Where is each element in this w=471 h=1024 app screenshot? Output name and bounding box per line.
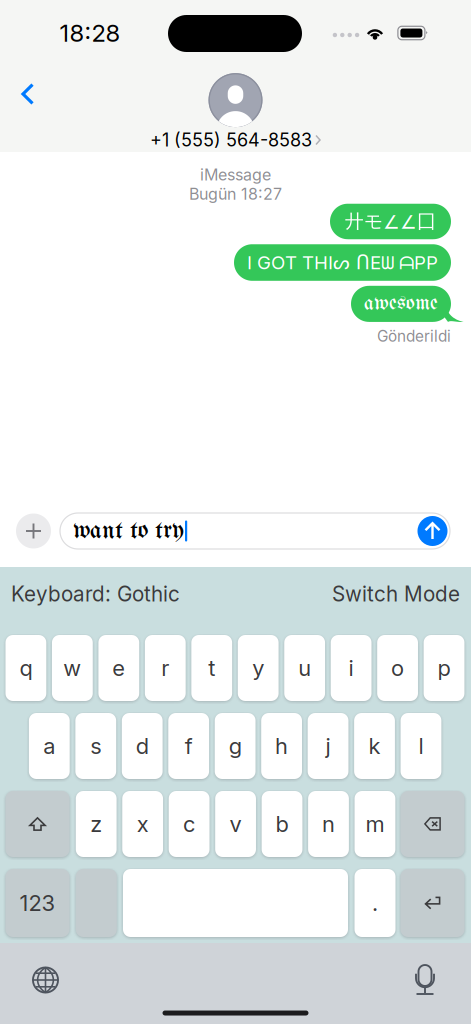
button[interactable]: i: [331, 635, 371, 701]
button[interactable]: .: [354, 869, 395, 937]
button[interactable]: 123: [5, 869, 69, 937]
button[interactable]: t: [191, 635, 232, 701]
button[interactable]: Back: [6, 72, 50, 116]
button[interactable]: h: [261, 713, 302, 779]
staticText: a: [43, 733, 55, 759]
staticText: s: [90, 733, 101, 759]
staticText: Bugün 18:27: [189, 184, 282, 204]
button[interactable]: n: [308, 791, 349, 857]
button[interactable]: w: [52, 635, 93, 701]
button[interactable]: e: [98, 635, 139, 701]
staticText: w: [63, 655, 81, 681]
staticText: j: [326, 733, 331, 759]
button[interactable]: I GOT THIᔕ ᑎEᗯ ᗩPP: [234, 244, 451, 281]
button[interactable]: d: [122, 713, 163, 779]
button[interactable]: v: [215, 791, 256, 857]
button[interactable]: k: [354, 713, 395, 779]
button[interactable]: m: [355, 791, 395, 857]
staticText: m: [365, 811, 384, 837]
staticText: k: [368, 733, 380, 759]
button[interactable]: Next keyboard: [23, 958, 67, 1002]
staticText: want to try: [73, 518, 184, 544]
staticText: Switch Mode: [332, 581, 460, 606]
button[interactable]: Switch Mode: [332, 581, 460, 606]
button[interactable]: a: [29, 713, 70, 779]
staticText: c: [183, 811, 195, 837]
button[interactable]: r: [145, 635, 186, 701]
staticText: i: [349, 655, 354, 681]
button[interactable]: Shift: [5, 791, 69, 857]
staticText: q: [19, 655, 32, 681]
staticText: x: [137, 811, 149, 837]
button[interactable]: Add attachment: [16, 513, 51, 548]
staticText: 18:28: [59, 18, 120, 47]
button[interactable]: +1 (555) 564-8583: [150, 59, 321, 151]
staticText: p: [437, 655, 450, 681]
staticText: z: [90, 811, 102, 837]
button[interactable]: Delete: [400, 791, 464, 857]
staticText: 廾モ∠∠囗: [345, 210, 436, 233]
button[interactable]: q: [5, 635, 46, 701]
button[interactable]: f: [168, 713, 209, 779]
button[interactable]: s: [75, 713, 116, 779]
staticText: 123: [19, 890, 55, 916]
button[interactable]: y: [238, 635, 279, 701]
staticText: I GOT THIᔕ ᑎEᗯ ᗩPP: [247, 251, 438, 274]
button[interactable]: space: [123, 869, 348, 937]
staticText: e: [112, 655, 125, 681]
button[interactable]: x: [122, 791, 163, 857]
button[interactable]: o: [377, 635, 418, 701]
staticText: d: [136, 733, 149, 759]
staticText: n: [322, 811, 335, 837]
staticText: v: [230, 811, 242, 837]
staticText: f: [185, 733, 193, 759]
button[interactable]: awesome: [351, 286, 451, 322]
button[interactable]: b: [262, 791, 302, 857]
button[interactable]: j: [308, 713, 348, 779]
staticText: awesome: [364, 293, 438, 315]
button[interactable]: u: [284, 635, 325, 701]
button[interactable]: Dictation: [403, 958, 447, 1002]
button[interactable]: p: [424, 635, 464, 701]
staticText: r: [161, 655, 169, 681]
button[interactable]: 廾モ∠∠囗: [330, 204, 451, 239]
staticText: iMessage: [200, 165, 271, 184]
staticText: Keyboard: Gothic: [11, 581, 180, 606]
staticText: Gönderildi: [377, 327, 451, 345]
button[interactable]: g: [215, 713, 255, 779]
staticText: +1 (555) 564-8583: [150, 129, 312, 151]
staticText: .: [372, 890, 378, 916]
staticText: l: [418, 733, 423, 759]
staticText: y: [252, 655, 264, 681]
button[interactable]: z: [76, 791, 117, 857]
staticText: t: [208, 655, 215, 681]
button[interactable]: c: [169, 791, 209, 857]
button[interactable]: Send: [417, 516, 447, 546]
staticText: g: [229, 733, 242, 759]
staticText: b: [275, 811, 288, 837]
staticText: h: [275, 733, 288, 759]
button[interactable]: Return: [400, 869, 464, 937]
staticText: o: [391, 655, 404, 681]
button[interactable]: l: [401, 713, 441, 779]
staticText: u: [298, 655, 311, 681]
